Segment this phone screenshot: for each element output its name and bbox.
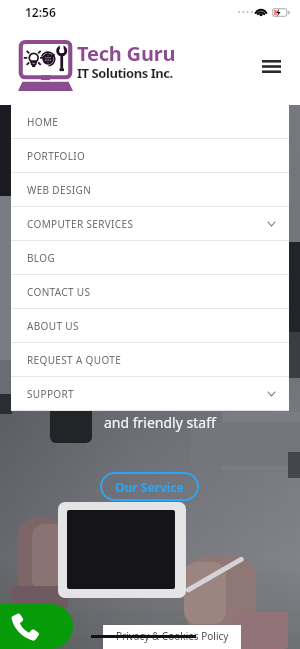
- staticText: Tech Guru: [77, 40, 176, 67]
- button[interactable]: ABOUT US: [11, 309, 289, 343]
- staticText: ABOUT US: [27, 319, 79, 333]
- staticText: BLOG: [27, 251, 56, 265]
- button[interactable]: Our Service: [100, 472, 199, 501]
- staticText: WEB DESIGN: [27, 183, 92, 197]
- staticText: IT Solutions Inc.: [77, 64, 173, 82]
- staticText: SUPPORT: [27, 387, 74, 401]
- staticText: and friendly staff: [104, 413, 216, 432]
- button[interactable]: CONTACT US: [11, 275, 289, 309]
- staticText: REQUEST A QUOTE: [27, 353, 122, 367]
- button[interactable]: COMPUTER SERVICES: [11, 207, 289, 241]
- button[interactable]: WEB DESIGN: [11, 173, 289, 207]
- staticText: 12:56: [25, 4, 56, 20]
- button[interactable]: BLOG: [11, 241, 289, 275]
- staticText: PORTFOLIO: [27, 149, 86, 163]
- staticText: COMPUTER SERVICES: [27, 217, 134, 231]
- staticText: Our Service: [115, 479, 184, 495]
- staticText: Privacy & Cookies Policy: [116, 629, 229, 643]
- button[interactable]: REQUEST A QUOTE: [11, 343, 289, 377]
- button[interactable]: SUPPORT: [11, 377, 289, 411]
- button[interactable]: Call us: [0, 604, 73, 649]
- button[interactable]: Open navigation menu: [254, 49, 288, 83]
- button[interactable]: Privacy & Cookies Policy: [103, 625, 241, 649]
- button[interactable]: PORTFOLIO: [11, 139, 289, 173]
- button[interactable]: HOME: [11, 105, 289, 139]
- staticText: CONTACT US: [27, 285, 91, 299]
- staticText: HOME: [27, 115, 59, 129]
